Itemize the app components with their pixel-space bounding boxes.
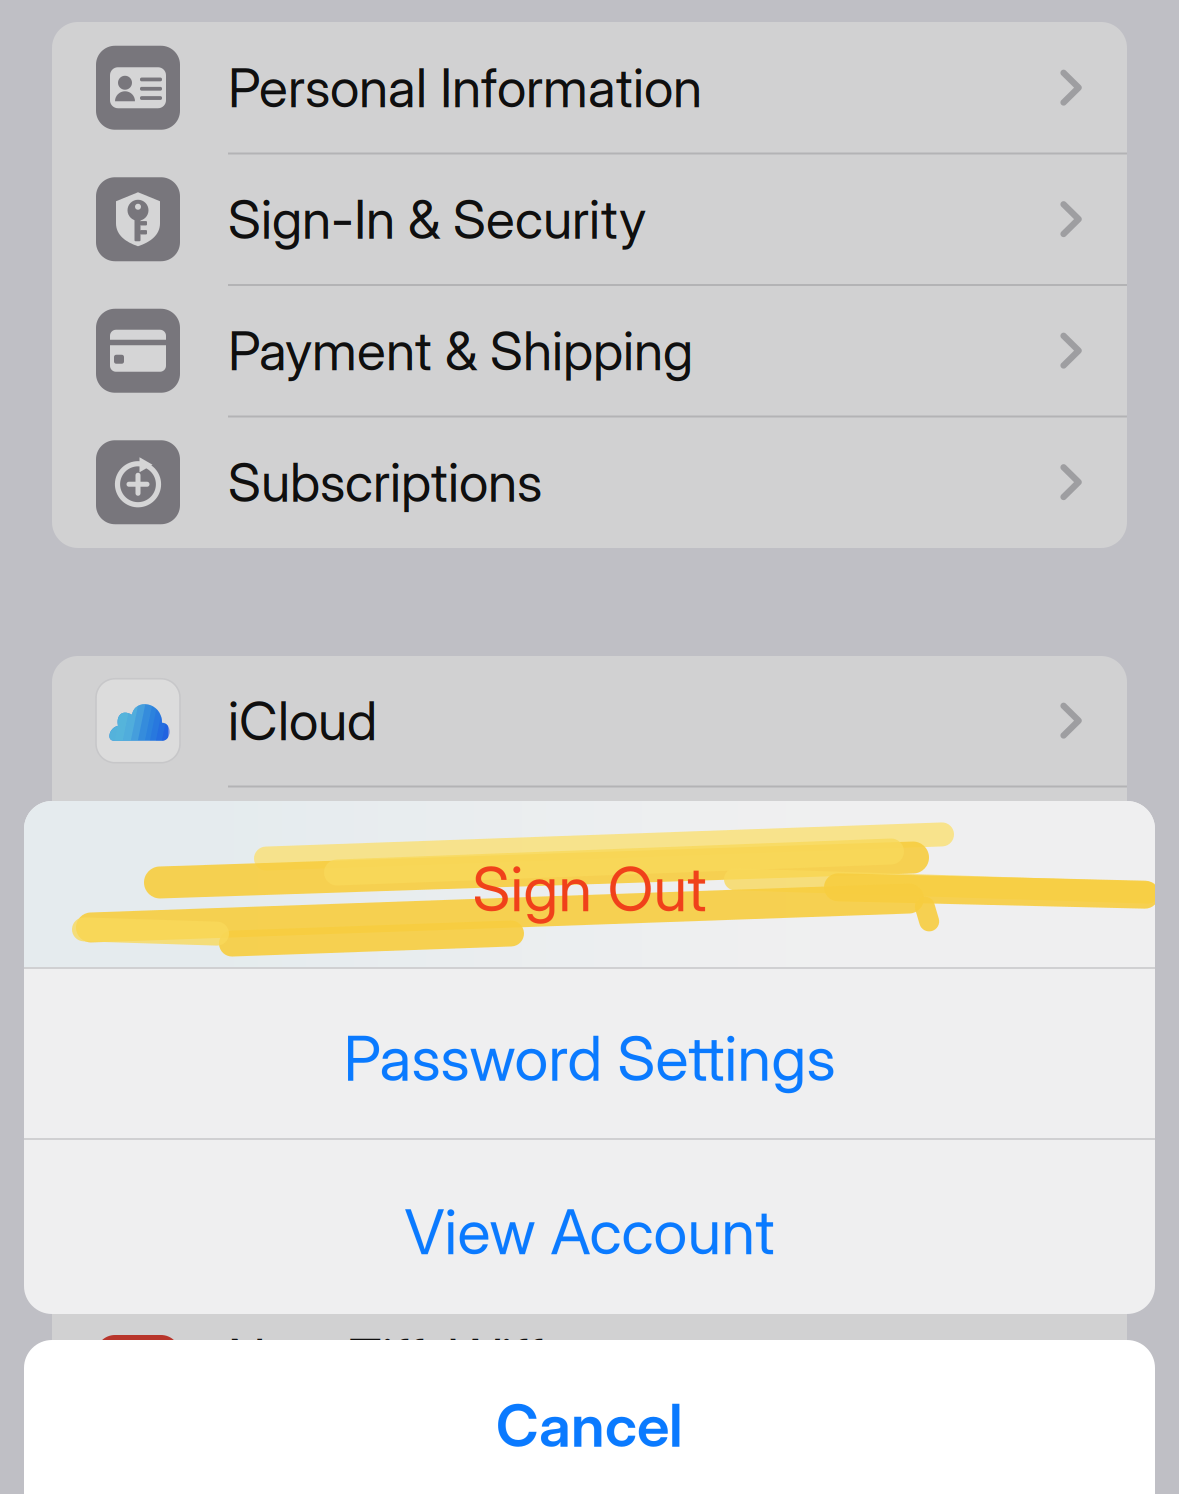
staticText: Sign Out [472, 852, 706, 926]
staticText: Nan Tiff Wiff [228, 1326, 543, 1390]
staticText: View Account [404, 1195, 774, 1269]
button[interactable]: Sign-In & Security [52, 154, 1127, 284]
button[interactable]: Password Settings [24, 969, 1155, 1138]
staticText: Subscriptions [228, 450, 542, 514]
button[interactable]: Cancel [24, 1340, 1155, 1494]
staticText: Payment & Shipping [228, 318, 693, 383]
button[interactable]: View Account [24, 1140, 1155, 1314]
button[interactable]: Personal Information [52, 23, 1127, 152]
button[interactable]: Subscriptions [52, 417, 1127, 547]
staticText: Sign-In & Security [228, 187, 646, 251]
button[interactable]: iCloud [52, 656, 1127, 785]
staticText: Personal Information [228, 55, 702, 120]
button[interactable]: Payment & Shipping [52, 286, 1127, 415]
staticText: iCloud [228, 688, 377, 753]
staticText: Cancel [496, 1390, 683, 1461]
staticText: Password Settings [343, 1021, 835, 1096]
